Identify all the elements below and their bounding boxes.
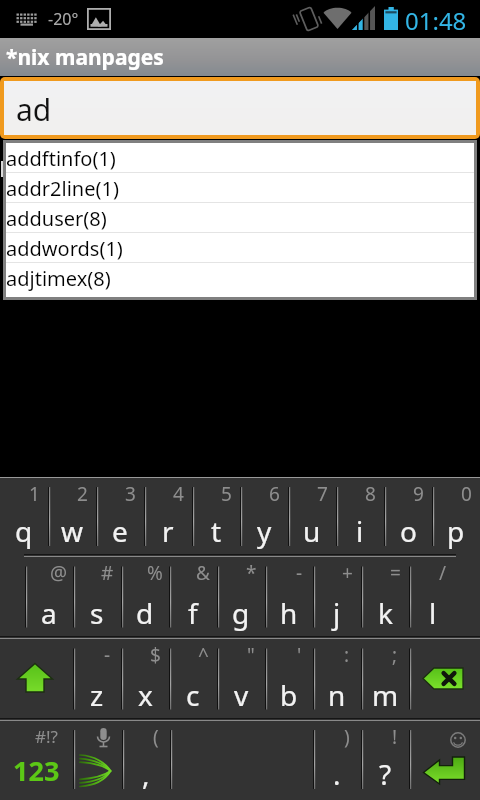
staticText: 1 — [29, 481, 40, 507]
staticText: f — [188, 594, 198, 632]
staticText: addftinfo(1) — [6, 145, 116, 172]
staticText: addwords(1) — [6, 235, 123, 262]
button[interactable]: addwords(1) — [6, 233, 474, 263]
button[interactable]: : — [313, 639, 361, 721]
staticText: 2 — [77, 481, 88, 507]
staticText: v — [234, 676, 249, 714]
button[interactable]: 5 — [192, 478, 240, 557]
staticText: o — [400, 512, 417, 550]
staticText: #!? — [35, 725, 58, 748]
staticText: 5 — [221, 481, 232, 507]
staticText: , — [142, 755, 150, 793]
staticText: % — [147, 560, 163, 586]
button[interactable]: & — [169, 557, 217, 639]
button[interactable]: 0 — [432, 478, 480, 557]
staticText: : — [344, 642, 350, 668]
staticText: l — [429, 594, 437, 632]
button[interactable]: + — [313, 557, 361, 639]
button[interactable]: # — [73, 557, 121, 639]
staticText: adduser(8) — [6, 205, 107, 232]
staticText: k — [378, 594, 393, 632]
button[interactable]: Voice input — [73, 721, 122, 800]
staticText: . — [333, 755, 341, 793]
staticText: 01:48 — [405, 4, 467, 37]
button[interactable]: 7 — [288, 478, 336, 557]
staticText: ' — [297, 642, 302, 668]
button[interactable]: Backspace — [409, 639, 480, 721]
staticText: - — [296, 560, 303, 586]
staticText: g — [232, 594, 250, 632]
button[interactable]: - — [265, 557, 313, 639]
staticText: / — [439, 560, 447, 586]
staticText: a — [41, 594, 57, 632]
staticText: " — [247, 642, 255, 668]
staticText: x — [138, 676, 153, 714]
staticText: 123 — [13, 752, 60, 789]
button[interactable]: ' — [265, 639, 313, 721]
staticText: addr2line(1) — [6, 175, 119, 202]
button[interactable]: addr2line(1) — [6, 173, 474, 203]
button[interactable]: 4 — [144, 478, 192, 557]
staticText: y — [257, 512, 272, 550]
staticText: 9 — [413, 481, 424, 507]
button[interactable]: * — [217, 557, 265, 639]
staticText: 6 — [269, 481, 280, 507]
button[interactable]: 9 — [384, 478, 432, 557]
button[interactable]: ad — [4, 81, 476, 135]
button[interactable]: 8 — [336, 478, 384, 557]
staticText: ! — [392, 724, 398, 750]
staticText: 8 — [365, 481, 376, 507]
button[interactable]: = — [361, 557, 409, 639]
button[interactable]: Enter — [409, 721, 480, 800]
staticText: ) — [344, 724, 350, 750]
button[interactable]: Shift — [0, 639, 73, 721]
button[interactable]: " — [217, 639, 265, 721]
staticText: *nix manpages — [6, 43, 164, 72]
staticText: + — [342, 560, 353, 586]
staticText: n — [328, 676, 346, 714]
button[interactable]: % — [121, 557, 169, 639]
button[interactable]: ! — [361, 721, 409, 800]
staticText: c — [186, 676, 200, 714]
button[interactable]: ; — [361, 639, 409, 721]
button[interactable]: 3 — [96, 478, 144, 557]
staticText: 4 — [173, 481, 184, 507]
button[interactable]: / — [409, 557, 457, 639]
button[interactable]: ( — [122, 721, 170, 800]
button[interactable]: - — [73, 639, 121, 721]
button[interactable]: $ — [121, 639, 169, 721]
staticText: ; — [392, 642, 398, 668]
button[interactable]: ) — [313, 721, 361, 800]
staticText: @ — [50, 560, 68, 586]
staticText: # — [101, 560, 114, 586]
staticText: ^ — [198, 642, 209, 668]
staticText: ad — [16, 89, 52, 130]
button[interactable]: #!? — [0, 721, 73, 800]
staticText: q — [15, 512, 33, 550]
staticText: i — [356, 512, 364, 550]
staticText: ? — [379, 755, 392, 793]
staticText: h — [280, 594, 298, 632]
button[interactable]: adjtimex(8) — [6, 263, 474, 293]
staticText: m — [372, 676, 399, 714]
button[interactable]: adduser(8) — [6, 203, 474, 233]
staticText: - — [104, 642, 111, 668]
button[interactable]: 1 — [0, 478, 48, 557]
button[interactable]: ^ — [169, 639, 217, 721]
staticText: $ — [150, 642, 161, 668]
button[interactable]: @ — [25, 557, 73, 639]
staticText: -20° — [48, 8, 79, 30]
staticText: ( — [153, 724, 159, 750]
staticText: w — [61, 512, 84, 550]
staticText: p — [447, 512, 465, 550]
staticText: adjtimex(8) — [6, 265, 111, 292]
button[interactable]: addftinfo(1) — [6, 143, 474, 173]
staticText: * — [246, 560, 257, 586]
button[interactable]: 6 — [240, 478, 288, 557]
button[interactable]: Space — [170, 721, 313, 800]
staticText: z — [90, 676, 104, 714]
staticText: b — [280, 676, 298, 714]
staticText: = — [390, 560, 401, 586]
button[interactable]: 2 — [48, 478, 96, 557]
staticText: s — [90, 594, 104, 632]
